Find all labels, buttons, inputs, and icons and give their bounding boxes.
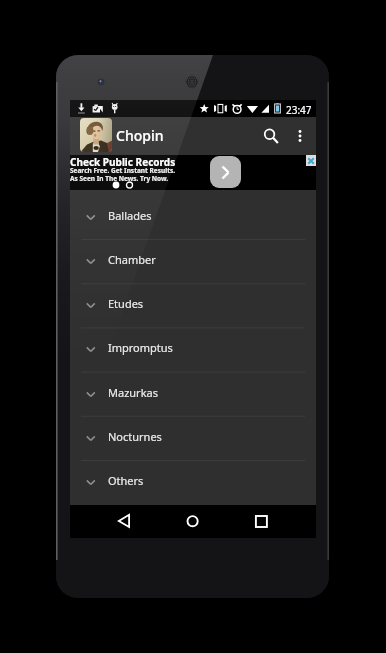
button[interactable]: App icon — [80, 118, 112, 152]
button[interactable]: Ballades — [70, 190, 316, 239]
button[interactable]: Back — [104, 505, 144, 537]
staticText: As Seen In The News. Try Now. — [70, 174, 169, 183]
button[interactable]: Chamber — [70, 239, 316, 283]
staticText: Impromptus — [108, 340, 173, 355]
button[interactable]: Etudes — [70, 283, 316, 327]
button[interactable]: Recents — [241, 505, 281, 537]
staticText: Etudes — [108, 296, 144, 311]
staticText: Ballades — [108, 208, 152, 223]
button[interactable]: Mazurkas — [70, 372, 316, 416]
button[interactable]: Others — [70, 460, 316, 504]
staticText: 23:47 — [286, 103, 312, 117]
button[interactable]: Next — [210, 156, 241, 188]
staticText: Chopin — [116, 126, 164, 145]
button[interactable]: Home — [172, 505, 212, 537]
staticText: Nocturnes — [108, 429, 162, 444]
button[interactable]: More options — [288, 124, 312, 148]
staticText: Others — [108, 473, 144, 488]
button[interactable]: Close ad — [306, 155, 316, 166]
staticText: Chamber — [108, 252, 156, 267]
staticText: Check Public Records — [70, 155, 176, 169]
button[interactable]: Check Public Records — [70, 155, 316, 190]
button[interactable]: Impromptus — [70, 327, 316, 371]
staticText: Search Free. Get Instant Results. — [70, 166, 176, 175]
button[interactable]: Search — [256, 121, 286, 151]
button[interactable]: Nocturnes — [70, 416, 316, 460]
staticText: Mazurkas — [108, 385, 158, 400]
